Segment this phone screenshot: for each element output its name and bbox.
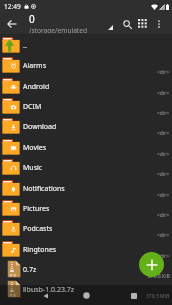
button[interactable]: Music [0, 157, 172, 177]
button[interactable]: More options [151, 16, 167, 32]
staticText: <dir> [157, 192, 170, 199]
staticText: <dir> [157, 171, 170, 178]
button[interactable]: Recents [126, 288, 141, 303]
button[interactable]: Ringtones [0, 239, 172, 259]
button[interactable]: 0.7z [0, 259, 172, 279]
staticText: Download [23, 122, 170, 132]
staticText: 276.8 KiB [148, 273, 170, 280]
staticText: <dir> [157, 130, 170, 137]
button[interactable]: Search [119, 16, 135, 32]
button[interactable]: Pictures [0, 198, 172, 218]
staticText: 370.3 MiB [146, 293, 170, 300]
staticText: Alarms [23, 61, 170, 71]
staticText: <dir> [157, 90, 170, 97]
staticText: Movies [23, 143, 170, 153]
button[interactable]: libusb-1.0.23.7z [0, 279, 172, 299]
button[interactable]: Download [0, 116, 172, 136]
staticText: Android [23, 82, 170, 92]
staticText: Podcasts [23, 224, 170, 234]
staticText: Ringtones [23, 245, 170, 255]
button[interactable]: Movies [0, 137, 172, 157]
button[interactable]: Alarms [0, 55, 172, 75]
staticText: 12:49 [4, 2, 21, 11]
staticText: libusb-1.0.23.7z [23, 285, 170, 295]
staticText: <dir> [157, 253, 170, 260]
staticText: <dir> [157, 151, 170, 158]
button[interactable]: .. [0, 35, 172, 55]
staticText: Notifications [23, 184, 170, 194]
staticText: 0 [29, 12, 35, 26]
button[interactable]: DCIM [0, 96, 172, 116]
button[interactable]: View mode [135, 16, 151, 32]
staticText: /storage/emulated [29, 26, 88, 33]
staticText: 0.7z [23, 265, 170, 275]
staticText: <dir> [157, 212, 170, 219]
button[interactable]: Add [139, 252, 164, 277]
staticText: Music [23, 163, 170, 173]
button[interactable]: Android [0, 76, 172, 96]
staticText: DCIM [23, 102, 170, 112]
staticText: Pictures [23, 204, 170, 214]
button[interactable]: Podcasts [0, 218, 172, 238]
staticText: <dir> [157, 232, 170, 239]
staticText: <dir> [157, 69, 170, 76]
button[interactable]: Notifications [0, 178, 172, 198]
staticText: <dir> [157, 110, 170, 117]
button[interactable]: Back [38, 288, 53, 303]
button[interactable]: Navigate up [2, 14, 22, 34]
button[interactable]: Home [79, 288, 94, 303]
staticText: .. [23, 41, 170, 51]
